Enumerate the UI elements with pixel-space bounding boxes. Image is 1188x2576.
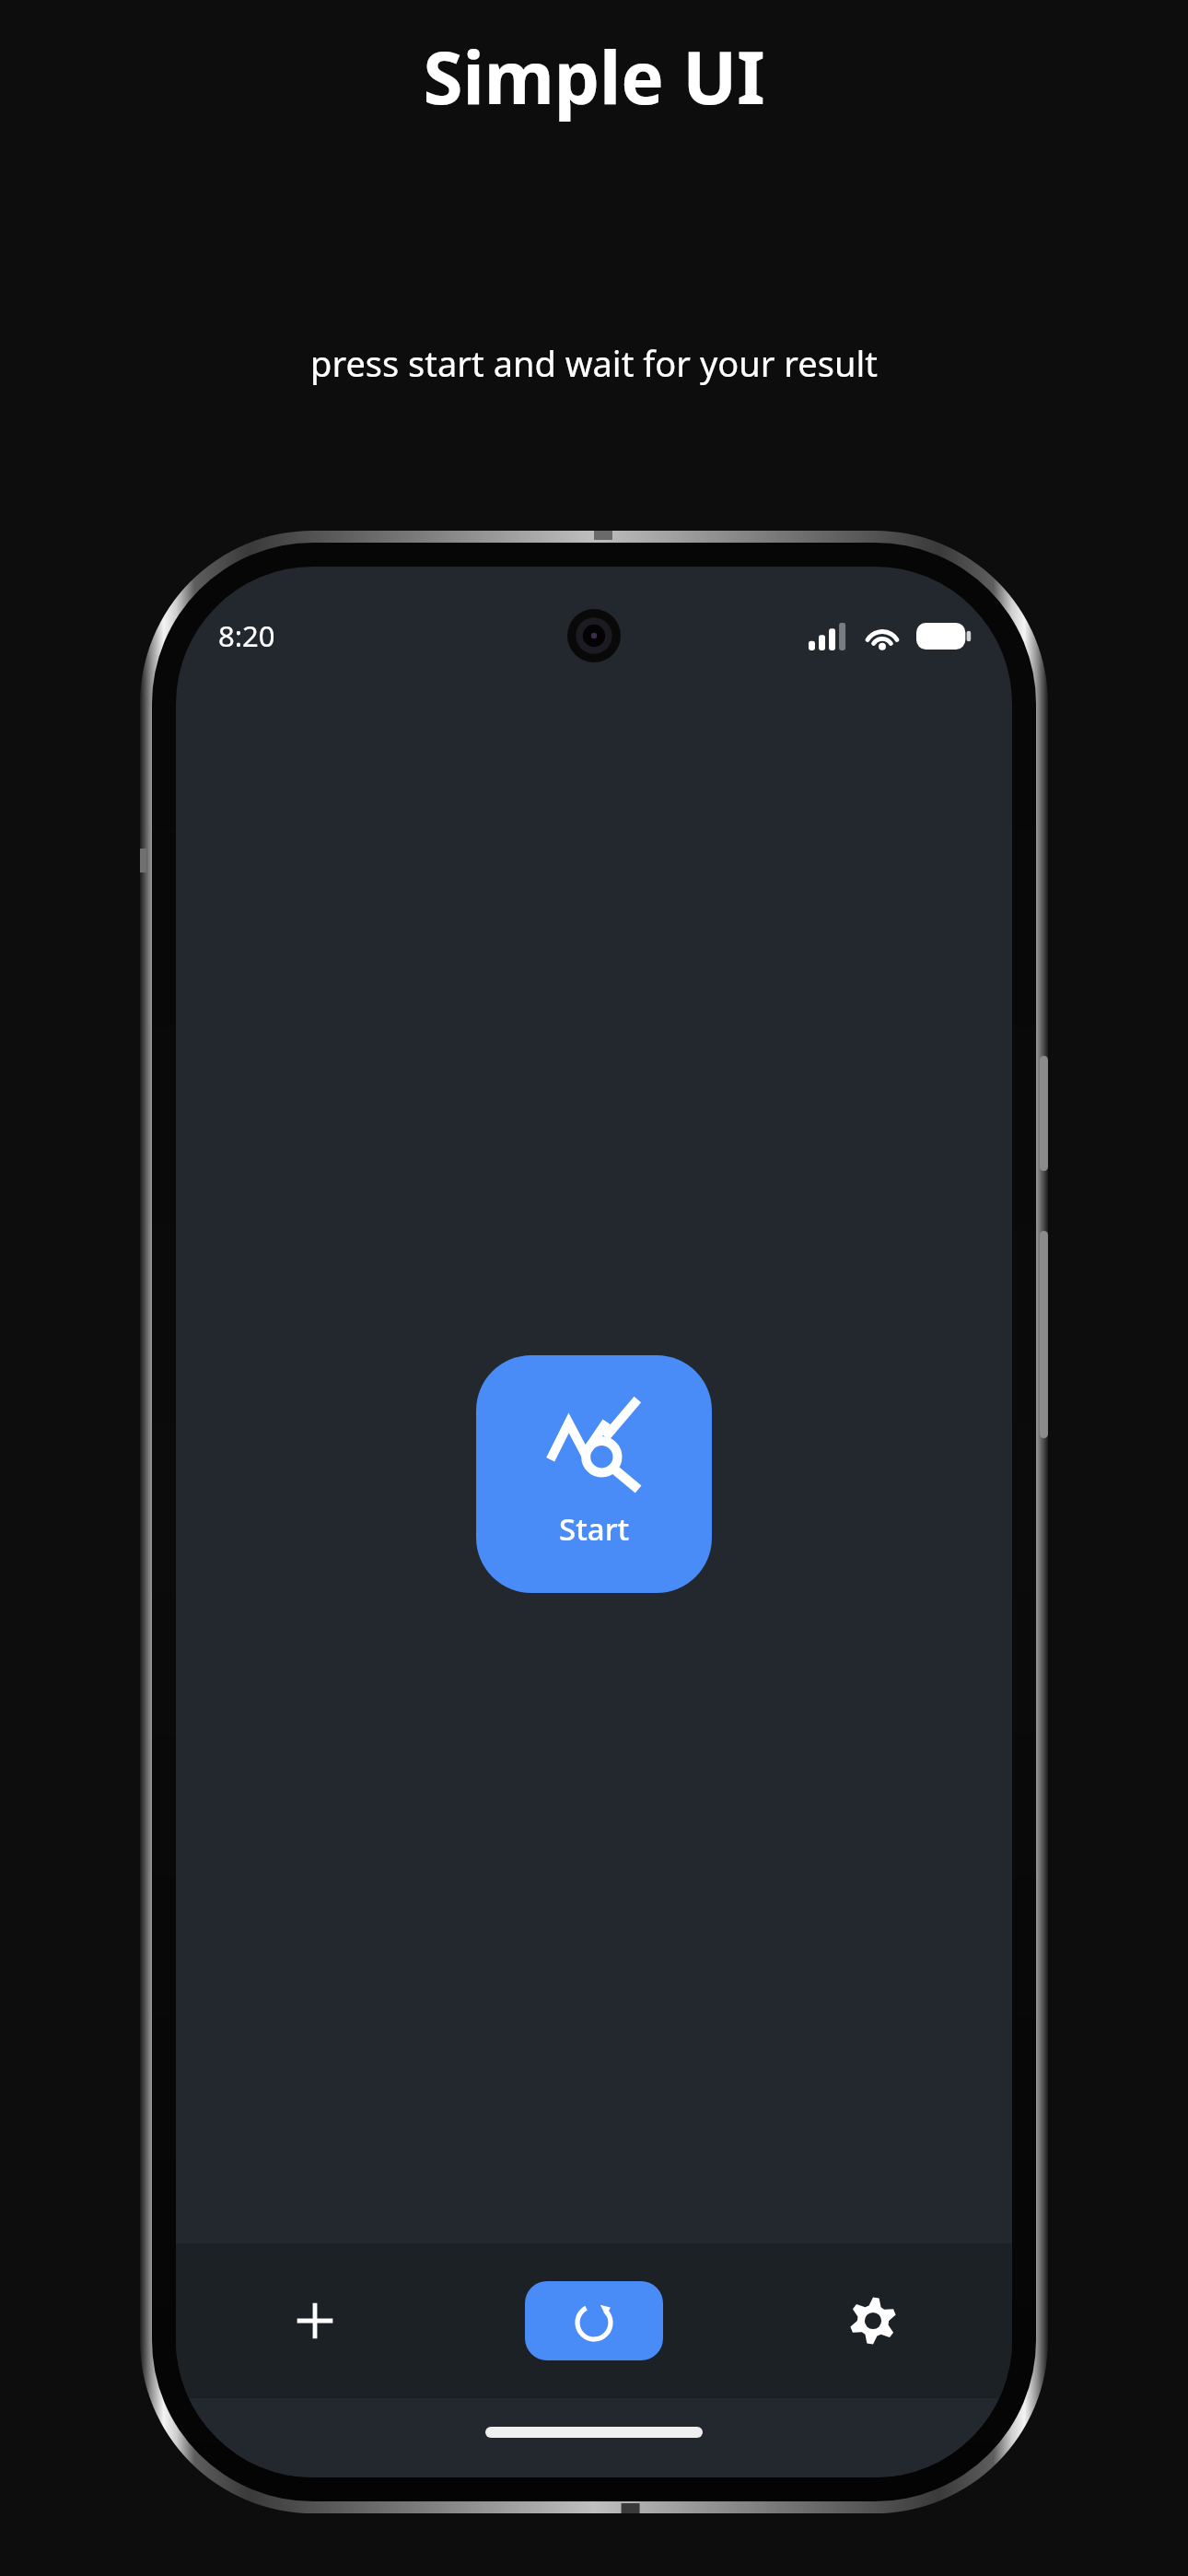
staticText: Simple UI	[423, 28, 765, 125]
staticText: 8:20	[218, 616, 275, 655]
staticText: Start	[559, 1508, 630, 1550]
button[interactable]: Start	[476, 1355, 712, 1593]
button[interactable]: Refresh	[525, 2281, 663, 2360]
button[interactable]: Add	[176, 2243, 454, 2398]
staticText: press start and wait for your result	[310, 339, 878, 387]
button[interactable]: Settings	[733, 2243, 1012, 2398]
